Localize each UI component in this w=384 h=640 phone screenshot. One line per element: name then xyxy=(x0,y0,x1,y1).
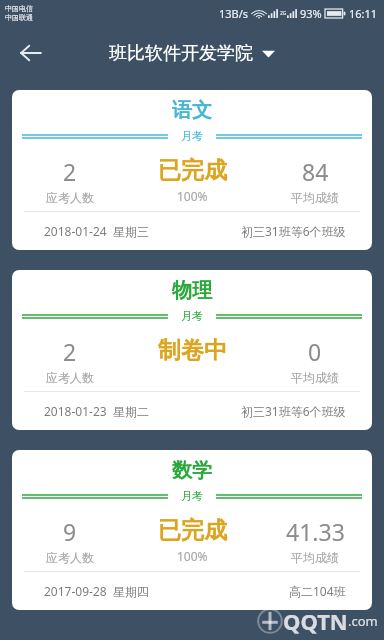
staticText: 2017-09-28 星期四 xyxy=(44,583,149,599)
button[interactable]: 数学 xyxy=(12,450,372,610)
button[interactable]: 语文 xyxy=(12,90,372,250)
staticText: 2018-01-23 星期二 xyxy=(44,403,149,419)
staticText: 月考 xyxy=(181,309,203,323)
staticText: 中国电信 xyxy=(5,4,33,13)
staticText: 已完成 xyxy=(158,516,227,545)
staticText: 语文 xyxy=(172,98,212,123)
staticText: 数学 xyxy=(172,458,212,483)
staticText: 高二104班 xyxy=(289,583,346,599)
staticText: 已完成 xyxy=(158,156,227,185)
staticText: 13B/s xyxy=(219,6,249,21)
staticText: 9 xyxy=(63,516,77,547)
button[interactable]: 物理 xyxy=(12,270,372,430)
staticText: 月考 xyxy=(181,129,203,143)
staticText: 2018-01-24 星期三 xyxy=(44,223,149,239)
staticText: 0 xyxy=(308,336,322,367)
staticText: 100% xyxy=(177,188,208,204)
staticText: 2G xyxy=(280,10,287,17)
staticText: 物理 xyxy=(172,278,212,303)
staticText: QQTN xyxy=(283,606,348,636)
staticText: 41.33 xyxy=(286,516,345,547)
staticText: 平均成绩 xyxy=(291,190,339,205)
staticText: 平均成绩 xyxy=(291,370,339,385)
staticText: 2 xyxy=(63,156,77,187)
staticText: 应考人数 xyxy=(46,190,94,205)
staticText: 初三31班等6个班级 xyxy=(241,403,346,419)
staticText: 100% xyxy=(177,548,208,564)
button[interactable]: 班比软件开发学院 xyxy=(109,42,275,65)
staticText: 初三31班等6个班级 xyxy=(241,223,346,239)
staticText: .com xyxy=(348,612,378,630)
staticText: 月考 xyxy=(181,489,203,503)
staticText: 应考人数 xyxy=(46,550,94,565)
staticText: 2 xyxy=(63,336,77,367)
staticText: 应考人数 xyxy=(46,370,94,385)
button[interactable]: Back xyxy=(8,30,54,76)
staticText: 制卷中 xyxy=(158,336,227,365)
staticText: 中国联通 xyxy=(5,13,33,22)
staticText: 84 xyxy=(302,156,329,187)
staticText: 平均成绩 xyxy=(291,550,339,565)
staticText: 班比软件开发学院 xyxy=(109,42,253,65)
staticText: 93% xyxy=(300,6,322,21)
staticText: 16:11 xyxy=(349,6,378,21)
